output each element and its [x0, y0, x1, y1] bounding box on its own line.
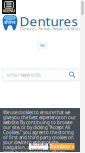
button[interactable]: Accept All Cookies — [29, 143, 48, 150]
staticText: Dentures, Partials, Repairs & More — [20, 26, 81, 31]
staticText: enter keywords — [6, 72, 40, 78]
button[interactable]: Translate » — [50, 143, 75, 150]
staticText: MENU — [3, 8, 15, 13]
button[interactable]: Menu — [2, 0, 16, 14]
staticText: Translate » — [50, 144, 75, 149]
button[interactable]: Search — [69, 72, 75, 78]
staticText: We use cookies to ensure that we give yo… — [3, 109, 76, 153]
staticText: shine — [4, 19, 16, 25]
staticText: Dentures — [19, 12, 77, 30]
staticText: Accept All Cookies — [30, 141, 46, 152]
